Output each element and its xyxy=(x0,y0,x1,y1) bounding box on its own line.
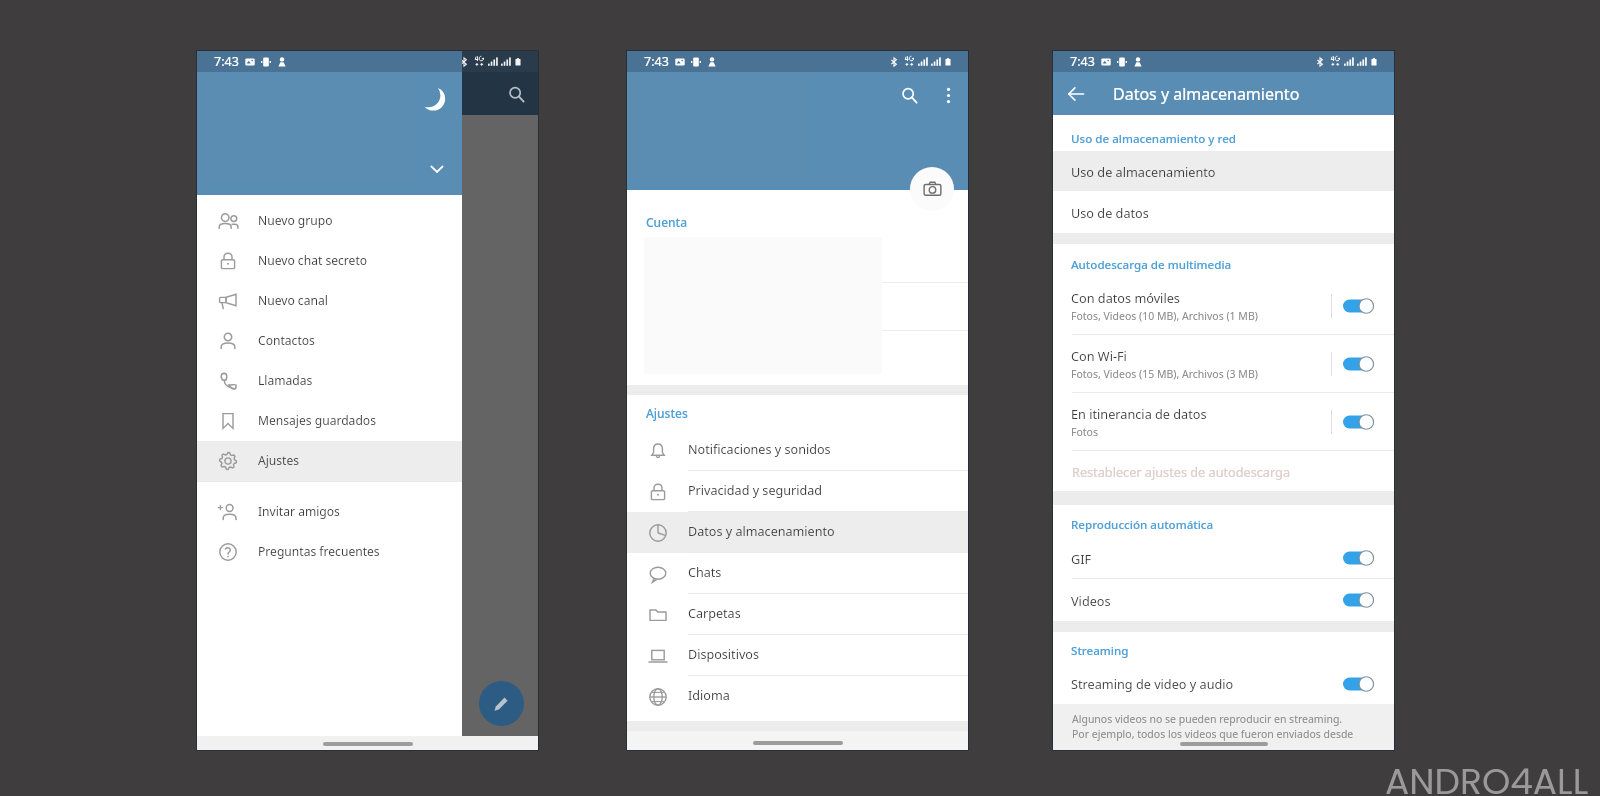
staticText: ANDRO4ALL xyxy=(1385,756,1589,796)
button[interactable]: Carpetas xyxy=(627,594,968,635)
button[interactable]: Search xyxy=(501,79,531,109)
button[interactable]: Llamadas xyxy=(197,361,462,401)
button[interactable]: Privacidad y seguridad xyxy=(627,471,968,512)
staticText: Nuevo grupo xyxy=(258,212,333,228)
staticText: Chats xyxy=(688,564,722,581)
staticText: Uso de almacenamiento xyxy=(1071,163,1216,180)
staticText: Videos xyxy=(1071,592,1111,609)
button[interactable]: Night mode xyxy=(423,89,455,121)
staticText: 7:43 xyxy=(1070,53,1095,70)
staticText: En itinerancia de datos xyxy=(1071,405,1207,422)
staticText: Reproducción automática xyxy=(1071,517,1214,533)
staticText: Datos y almacenamiento xyxy=(688,523,835,540)
staticText: Carpetas xyxy=(688,605,741,622)
button[interactable]: Chats xyxy=(627,553,968,594)
button[interactable]: Search xyxy=(893,79,925,111)
button[interactable]: Con datos móviles xyxy=(1053,277,1394,335)
button[interactable]: Mensajes guardados xyxy=(197,401,462,441)
button[interactable]: Toggle En itinerancia de datos xyxy=(1343,412,1375,432)
button[interactable]: More options xyxy=(932,79,964,111)
staticText: Contactos xyxy=(258,332,315,348)
staticText: Algunos videos no se pueden reproducir e… xyxy=(1072,712,1343,726)
staticText: Uso de almacenamiento y red xyxy=(1071,131,1236,147)
button[interactable]: Ajustes xyxy=(197,441,462,481)
button[interactable]: Datos y almacenamiento xyxy=(627,512,968,553)
staticText: Idioma xyxy=(688,687,730,704)
staticText: Cuenta xyxy=(646,214,688,230)
button[interactable]: Idioma xyxy=(627,676,968,717)
staticText: Con Wi-Fi xyxy=(1071,347,1127,364)
staticText: Restablecer ajustes de autodescarga xyxy=(1072,463,1291,480)
staticText: Invitar amigos xyxy=(258,503,340,519)
staticText: Streaming xyxy=(1071,643,1129,659)
button[interactable]: Preguntas frecuentes xyxy=(197,532,462,572)
button[interactable]: Nuevo grupo xyxy=(197,201,462,241)
button[interactable]: Toggle Con Wi-Fi xyxy=(1343,354,1375,374)
button[interactable]: Toggle GIF xyxy=(1343,548,1375,568)
staticText: Streaming de video y audio xyxy=(1071,675,1234,692)
button[interactable]: Back xyxy=(1061,79,1091,109)
staticText: Llamadas xyxy=(258,372,313,388)
staticText: Mensajes guardados xyxy=(258,412,376,428)
staticText: Uso de datos xyxy=(1071,204,1149,221)
button[interactable]: Nuevo canal xyxy=(197,281,462,321)
button[interactable]: En itinerancia de datos xyxy=(1053,393,1394,451)
button[interactable]: Con Wi-Fi xyxy=(1053,335,1394,393)
staticText: Autodescarga de multimedia xyxy=(1071,257,1232,273)
staticText: Preguntas frecuentes xyxy=(258,543,380,559)
staticText: Notificaciones y sonidos xyxy=(688,441,831,458)
button[interactable]: Uso de datos xyxy=(1053,191,1394,233)
staticText: 7:43 xyxy=(214,53,239,70)
button[interactable]: Nuevo chat secreto xyxy=(197,241,462,281)
staticText: 7:43 xyxy=(644,53,669,70)
staticText: Por ejemplo, todos los videos que fueron… xyxy=(1072,727,1354,741)
button[interactable]: Toggle Videos xyxy=(1343,590,1375,610)
staticText: Ajustes xyxy=(258,452,300,468)
staticText: Ajustes xyxy=(646,405,688,421)
button[interactable]: Streaming de video y audio xyxy=(1053,663,1394,704)
button[interactable]: Dispositivos xyxy=(627,635,968,676)
staticText: Dispositivos xyxy=(688,646,759,663)
staticText: Con datos móviles xyxy=(1071,289,1180,306)
button[interactable]: Expand accounts xyxy=(421,153,453,185)
button[interactable]: Contactos xyxy=(197,321,462,361)
staticText: Privacidad y seguridad xyxy=(688,482,823,499)
staticText: Nuevo canal xyxy=(258,292,328,308)
button[interactable]: Invitar amigos xyxy=(197,492,462,532)
button[interactable]: Videos xyxy=(1053,579,1394,621)
staticText: Fotos xyxy=(1071,425,1098,439)
button[interactable]: Uso de almacenamiento xyxy=(1053,151,1394,191)
staticText: Fotos, Videos (15 MB), Archivos (3 MB) xyxy=(1071,367,1258,381)
button[interactable]: Toggle Con datos móviles xyxy=(1343,296,1375,316)
staticText: Fotos, Videos (10 MB), Archivos (1 MB) xyxy=(1071,309,1258,323)
button[interactable]: New message xyxy=(479,681,524,726)
button[interactable]: Notificaciones y sonidos xyxy=(627,430,968,471)
button[interactable]: GIF xyxy=(1053,537,1394,579)
staticText: GIF xyxy=(1071,550,1092,567)
button[interactable]: Toggle Streaming de video y audio xyxy=(1343,674,1375,694)
staticText: Nuevo chat secreto xyxy=(258,252,368,268)
button[interactable]: Change photo xyxy=(910,167,954,211)
button[interactable]: Restablecer ajustes de autodescarga xyxy=(1053,451,1394,491)
staticText: Datos y almacenamiento xyxy=(1113,83,1300,105)
